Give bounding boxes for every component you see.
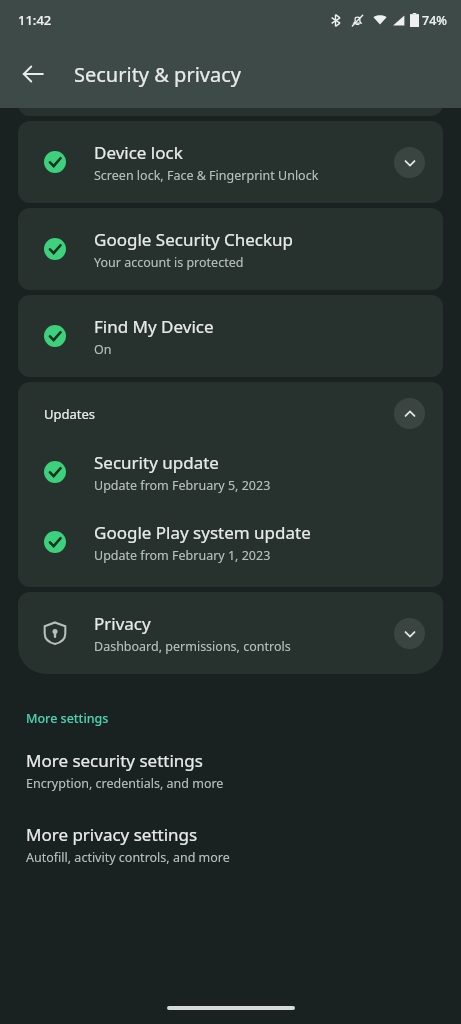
- staticText: Your account is protected: [94, 254, 244, 271]
- staticText: 11:42: [18, 11, 52, 29]
- staticText: Update from February 5, 2023: [94, 477, 271, 494]
- button[interactable]: Expand Device lock: [394, 147, 425, 178]
- button[interactable]: Privacy: [18, 592, 443, 674]
- staticText: Google Security Checkup: [94, 228, 294, 251]
- staticText: Security & privacy: [74, 61, 241, 88]
- button[interactable]: Device lock: [18, 121, 443, 203]
- button[interactable]: Security update: [18, 437, 443, 507]
- staticText: Play Protect scanned 3 hours ago: [94, 80, 290, 97]
- button[interactable]: More privacy settings: [0, 823, 461, 866]
- staticText: More privacy settings: [26, 823, 198, 846]
- button[interactable]: Expand Privacy: [394, 618, 425, 649]
- staticText: Find My Device: [94, 315, 214, 338]
- button[interactable]: Find My Device: [18, 295, 443, 377]
- staticText: More settings: [26, 710, 109, 727]
- staticText: Dashboard, permissions, controls: [94, 638, 291, 655]
- button[interactable]: More security settings: [0, 749, 461, 792]
- staticText: On: [94, 341, 112, 358]
- staticText: App security: [94, 54, 193, 77]
- staticText: Screen lock, Face & Fingerprint Unlock: [94, 167, 319, 184]
- staticText: Privacy: [94, 612, 151, 635]
- button[interactable]: App security: [18, 34, 443, 116]
- staticText: Device lock: [94, 141, 183, 164]
- staticText: Update from February 1, 2023: [94, 547, 271, 564]
- button[interactable]: Updates: [18, 382, 443, 437]
- staticText: Google Play system update: [94, 521, 311, 544]
- button[interactable]: Collapse Updates: [394, 398, 425, 429]
- button[interactable]: Google Play system update: [18, 507, 443, 577]
- staticText: Encryption, credentials, and more: [26, 775, 224, 792]
- button[interactable]: Google Security Checkup: [18, 208, 443, 290]
- staticText: Security update: [94, 451, 219, 474]
- staticText: More security settings: [26, 749, 203, 772]
- button[interactable]: Back: [10, 51, 56, 97]
- staticText: Autofill, activity controls, and more: [26, 849, 230, 866]
- staticText: Updates: [44, 405, 96, 423]
- staticText: 74%: [422, 12, 447, 29]
